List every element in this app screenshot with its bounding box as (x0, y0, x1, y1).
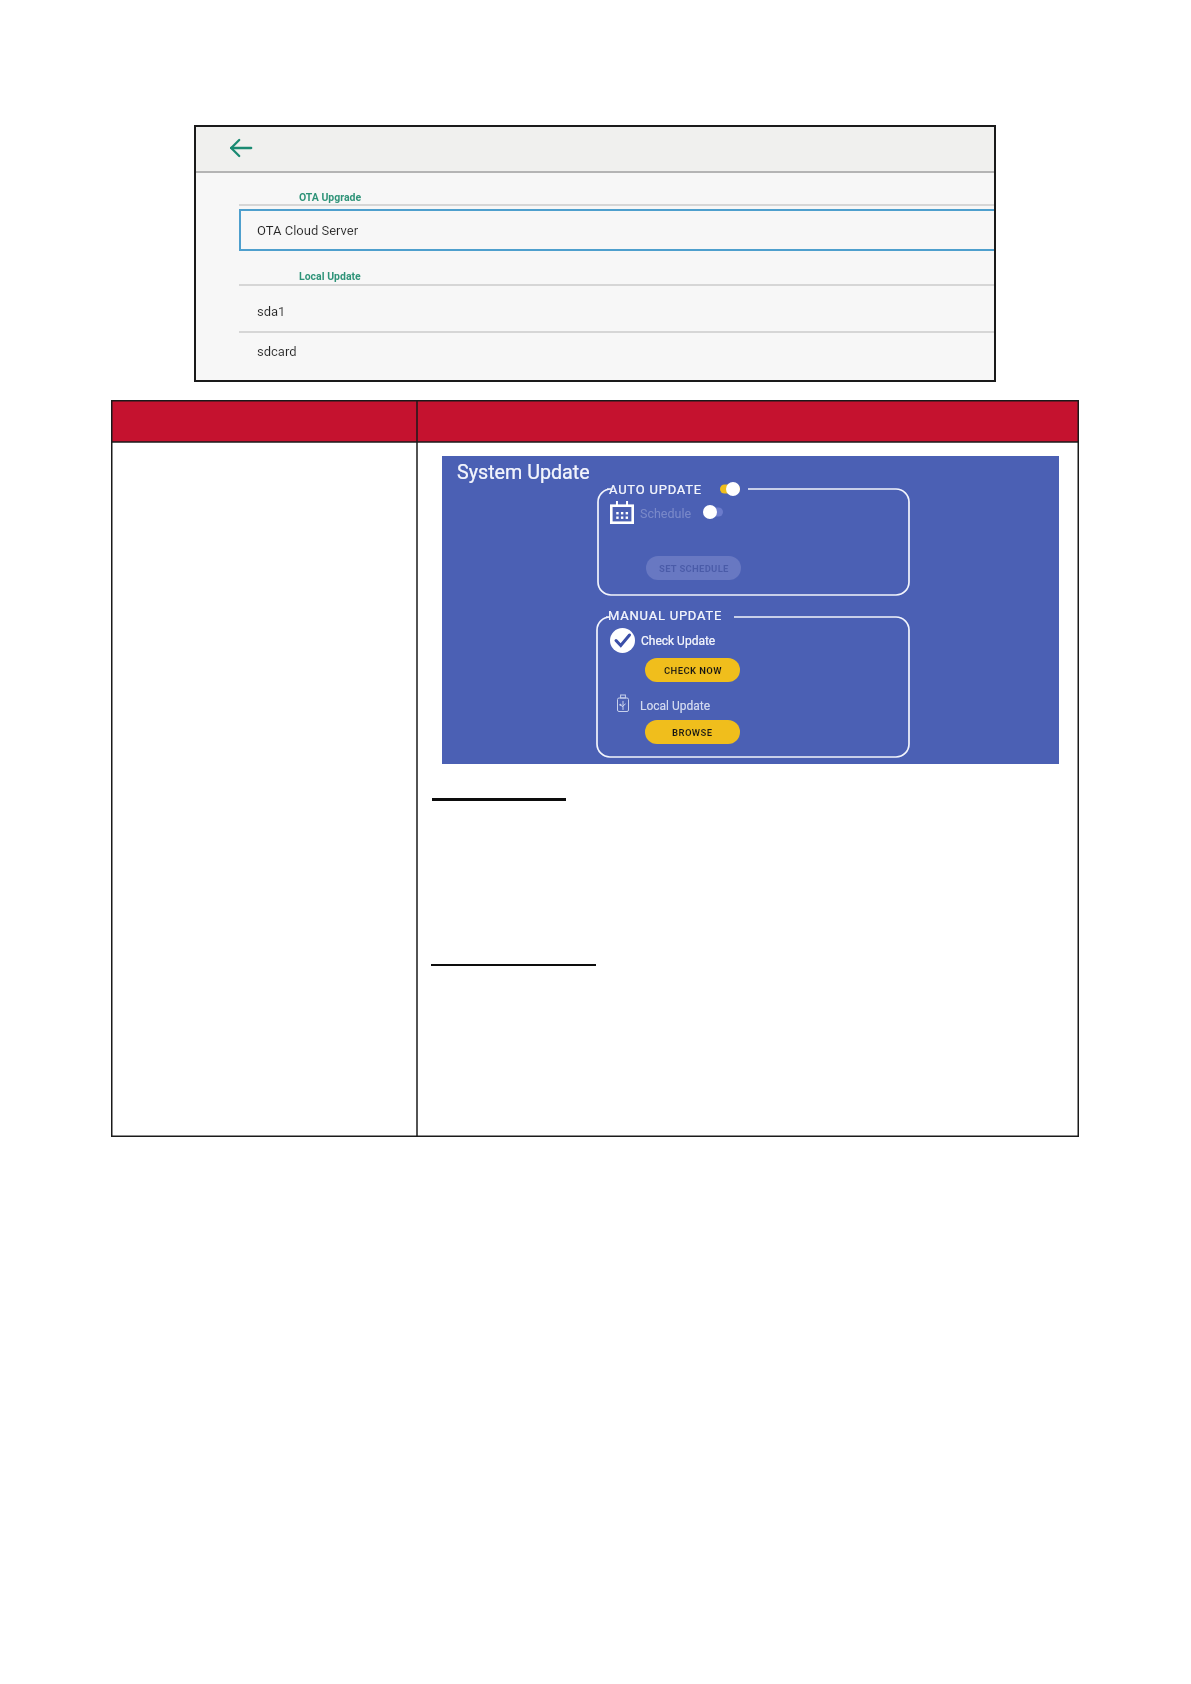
button[interactable]: Toggle on (720, 482, 740, 496)
button[interactable]: sda1 (194, 288, 996, 335)
staticText: Local Update (299, 270, 361, 282)
staticText: sda1 (257, 304, 286, 319)
staticText: MANUAL UPDATE (608, 608, 723, 623)
button[interactable]: BROWSE (645, 720, 740, 744)
staticText: System Update (457, 461, 590, 484)
staticText: Local Update (640, 699, 711, 713)
button[interactable]: Back (223, 131, 257, 165)
staticText: AUTO UPDATE (609, 482, 702, 497)
staticText: Schedule (640, 506, 692, 521)
staticText: sdcard (257, 344, 297, 359)
button[interactable]: sdcard (194, 328, 996, 375)
staticText: Check Update (641, 634, 716, 648)
button[interactable]: CHECK NOW (645, 658, 740, 682)
staticText: CHECK NOW (664, 665, 722, 676)
button[interactable]: SET SCHEDULE (646, 556, 741, 580)
staticText: OTA Cloud Server (257, 223, 359, 238)
button[interactable]: Toggle off (703, 505, 723, 519)
staticText: OTA Upgrade (299, 191, 362, 203)
staticText: BROWSE (672, 727, 713, 738)
staticText: SET SCHEDULE (659, 563, 729, 574)
button[interactable]: OTA Cloud Server (239, 209, 996, 251)
